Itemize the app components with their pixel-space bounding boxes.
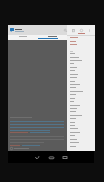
button[interactable]	[67, 145, 95, 148]
button[interactable]: Home	[44, 152, 58, 163]
button[interactable]	[67, 110, 95, 113]
button[interactable]	[67, 107, 95, 110]
button[interactable]	[67, 40, 95, 43]
button[interactable]	[37, 35, 67, 38]
button[interactable]	[67, 43, 95, 46]
button[interactable]	[67, 104, 95, 107]
button[interactable]	[67, 90, 95, 93]
button[interactable]	[67, 121, 95, 124]
button[interactable]: Search	[61, 26, 69, 34]
button[interactable]	[67, 100, 95, 103]
button[interactable]	[67, 62, 95, 65]
button[interactable]	[67, 117, 95, 120]
button[interactable]	[67, 97, 95, 100]
button[interactable]: Archive	[77, 26, 85, 34]
button[interactable]	[67, 52, 95, 55]
button[interactable]	[67, 93, 95, 96]
button[interactable]	[67, 59, 95, 62]
button[interactable]	[67, 73, 95, 76]
button[interactable]	[67, 114, 95, 117]
button[interactable]	[67, 36, 95, 39]
button[interactable]: Recent apps	[58, 152, 72, 163]
button[interactable]	[10, 147, 29, 150]
button[interactable]	[67, 56, 95, 59]
button[interactable]	[67, 138, 95, 141]
button[interactable]	[8, 25, 67, 35]
button[interactable]	[67, 76, 95, 79]
button[interactable]	[67, 134, 95, 137]
button[interactable]	[67, 124, 95, 127]
button[interactable]	[67, 127, 95, 130]
button[interactable]	[67, 141, 95, 144]
button[interactable]: Back	[30, 152, 44, 163]
button[interactable]: More options	[85, 26, 93, 34]
button[interactable]	[67, 86, 95, 89]
button[interactable]	[67, 80, 95, 83]
button[interactable]	[67, 131, 95, 134]
button[interactable]	[8, 35, 37, 38]
button[interactable]: Delete	[69, 26, 77, 34]
button[interactable]	[67, 83, 95, 86]
button[interactable]	[67, 69, 95, 72]
button[interactable]	[67, 66, 95, 69]
